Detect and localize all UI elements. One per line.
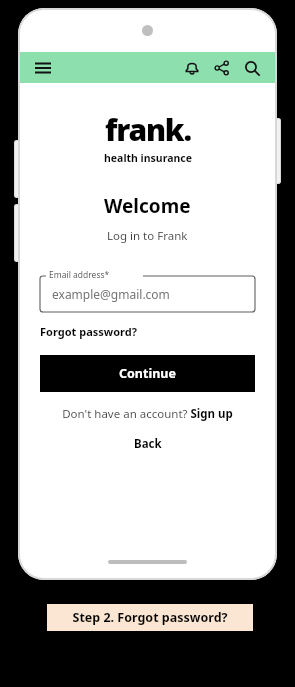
button[interactable]: Continue [40,355,255,392]
staticText: example@gmail.com [52,286,170,302]
staticText: Email address* [49,269,110,281]
button[interactable]: Back [40,436,255,452]
button[interactable]: Search [239,55,265,81]
staticText: Forgot password? [40,324,137,339]
button[interactable]: Email address* [40,270,255,312]
button[interactable]: Share [209,55,235,81]
staticText: frank. [105,109,191,150]
button[interactable]: Don't have an account? Sign up [40,406,255,422]
button[interactable]: Menu [30,55,56,81]
staticText: health insurance [104,151,192,165]
staticText: Log in to Frank [107,228,188,244]
button[interactable]: Forgot password? [40,324,137,339]
staticText: Back [134,436,162,452]
staticText: Welcome [104,193,191,219]
button[interactable]: Notifications [179,55,205,81]
staticText: Continue [119,365,176,382]
staticText: Step 2. Forgot password? [72,609,228,626]
staticText: Don't have an account? Sign up [62,406,233,422]
